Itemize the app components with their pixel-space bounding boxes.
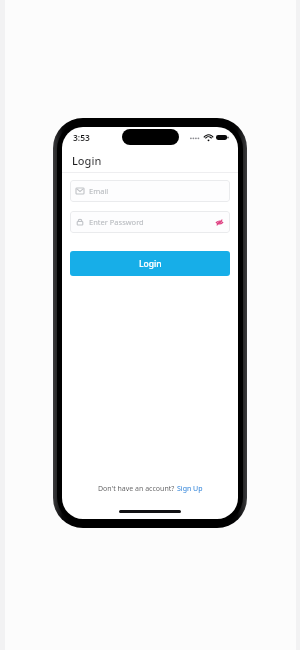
button[interactable]: Sign Up [177, 484, 203, 494]
staticText: Don't have an account? [98, 484, 177, 494]
button[interactable]: Login [70, 251, 230, 276]
button[interactable]: Email [70, 180, 230, 202]
staticText: 3:53 [73, 132, 90, 144]
staticText: Login [139, 258, 162, 270]
staticText: Login [72, 153, 102, 168]
staticText: Email [89, 186, 109, 196]
staticText: Sign Up [177, 484, 203, 494]
button[interactable]: Enter Password [70, 211, 230, 233]
button[interactable]: Toggle password visibility [214, 217, 224, 227]
staticText: Enter Password [89, 217, 144, 227]
